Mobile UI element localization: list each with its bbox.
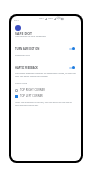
staticText: INDICATOR: [15, 82, 28, 85]
staticText: TURN SAFE DOT ON: [15, 47, 40, 51]
staticText: SAFE DOT: [15, 31, 33, 36]
button[interactable]: TOP LEFT CORNER: [11, 94, 81, 98]
staticText: LTE2: [48, 17, 53, 20]
staticText: 9:41: [14, 18, 19, 21]
staticText: Note: The indicator is the dot, you can …: [15, 101, 76, 107]
staticText: TOP RIGHT CORNER: [20, 88, 45, 92]
button[interactable]: TURN SAFE DOT ON: [11, 46, 81, 51]
staticText: The haptic feedback vibrates on applicat…: [15, 72, 76, 78]
button[interactable]: TOP RIGHT CORNER: [11, 88, 81, 92]
staticText: LTE1: [39, 17, 44, 20]
staticText: PREFERENCES: [15, 54, 30, 57]
button[interactable]: HAPTIC FEEDBACK: [11, 65, 81, 70]
staticText: HAPTIC FEEDBACK: [15, 66, 38, 70]
staticText: TOP LEFT CORNER: [20, 94, 43, 98]
staticText: Your privacy at your fingertips: [15, 35, 46, 38]
